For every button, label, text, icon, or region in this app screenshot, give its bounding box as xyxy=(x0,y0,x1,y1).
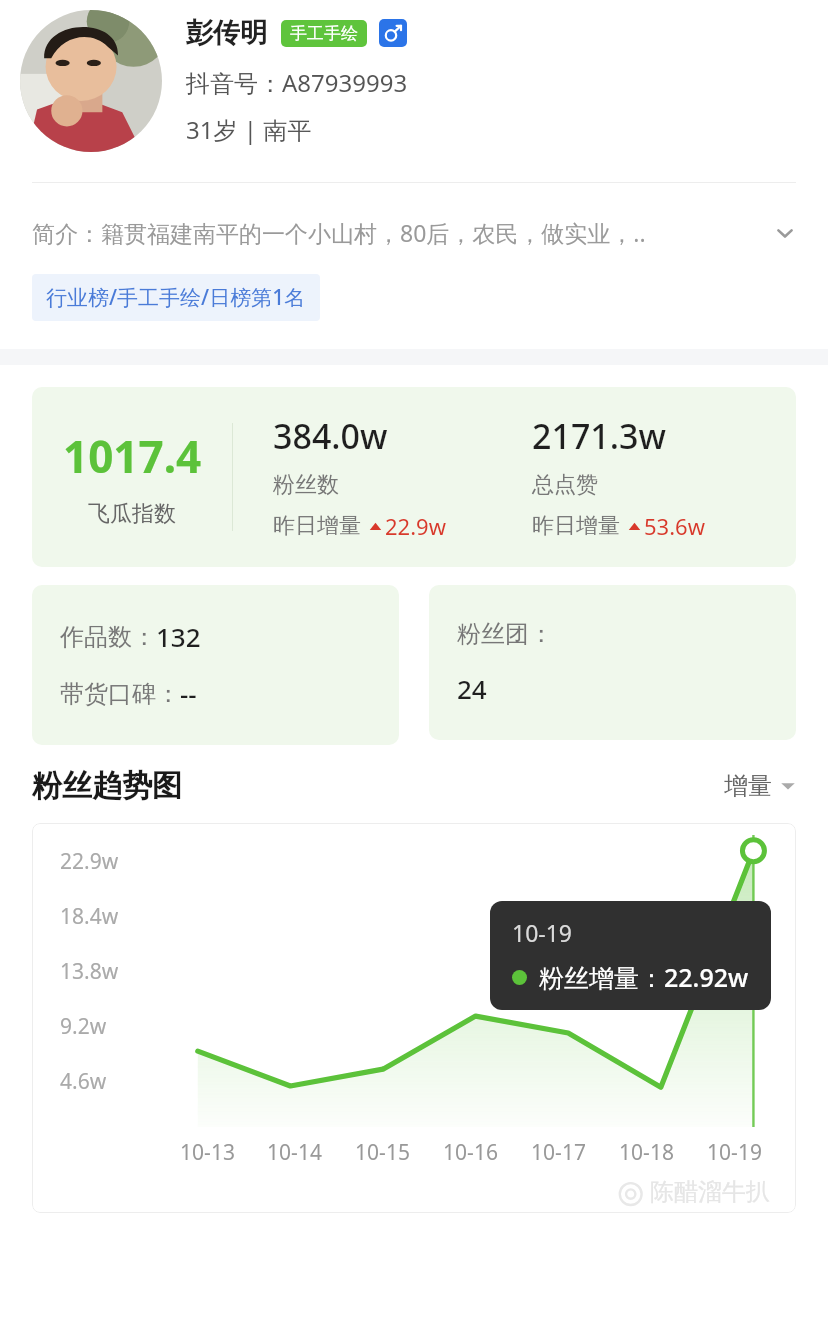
staticText: 9.2w xyxy=(60,1012,107,1041)
staticText: 10-16 xyxy=(443,1138,498,1167)
staticText: 粉丝增量：22.92w xyxy=(539,960,749,994)
staticText: 抖音号：A87939993 xyxy=(186,66,408,99)
staticText: 4.6w xyxy=(60,1067,107,1096)
staticText: 行业榜/手工手绘/日榜第1名 xyxy=(46,283,306,312)
button[interactable]: 增量 xyxy=(724,771,796,801)
button[interactable]: 1017.4 xyxy=(32,387,796,567)
staticText: 22.9w xyxy=(60,847,119,876)
staticText: -- xyxy=(180,676,197,711)
staticText: 粉丝趋势图 xyxy=(32,767,182,805)
button[interactable]: 粉丝团： xyxy=(429,585,796,740)
staticText: 总点赞 xyxy=(532,471,598,499)
staticText: 陈醋溜牛扒 xyxy=(650,1177,770,1207)
staticText: 增量 xyxy=(724,771,772,801)
staticText: 24 xyxy=(457,671,487,706)
button[interactable]: 行业榜/手工手绘/日榜第1名 xyxy=(32,274,320,321)
staticText: 13.8w xyxy=(60,957,119,986)
staticText: 10-14 xyxy=(267,1138,322,1167)
staticText: 384.0w xyxy=(273,413,388,459)
staticText: 10-15 xyxy=(355,1138,410,1167)
staticText: 作品数： xyxy=(60,622,156,652)
button[interactable]: Male xyxy=(379,19,407,47)
staticText: 132 xyxy=(156,619,201,654)
button[interactable]: 简介：籍贯福建南平的一个小山村，80后，农民，做实业，.. xyxy=(32,217,796,248)
button[interactable]: 22.9w xyxy=(32,823,796,1213)
staticText: 1017.4 xyxy=(63,426,202,486)
staticText: 2171.3w xyxy=(532,413,666,459)
staticText: 昨日增量 xyxy=(273,512,361,540)
other: Change metric xyxy=(780,778,796,794)
staticText: 粉丝数 xyxy=(273,471,339,499)
staticText: 53.6w xyxy=(644,511,705,541)
staticText: 简介：籍贯福建南平的一个小山村，80后，农民，做实业，.. xyxy=(32,217,764,248)
button[interactable]: 手工手绘 xyxy=(281,20,367,47)
staticText: 10-19 xyxy=(707,1138,762,1167)
other: Expand bio xyxy=(774,222,796,244)
button[interactable]: Profile avatar xyxy=(20,10,162,152)
staticText: 10-17 xyxy=(531,1138,586,1167)
staticText: 18.4w xyxy=(60,902,119,931)
staticText: 飞瓜指数 xyxy=(88,500,176,528)
staticText: 手工手绘 xyxy=(290,23,358,44)
staticText: 31岁 | 南平 xyxy=(186,113,312,146)
staticText: 带货口碑： xyxy=(60,679,180,709)
button[interactable]: 作品数： xyxy=(32,585,399,745)
staticText: 彭传明 xyxy=(186,16,267,50)
staticText: 10-13 xyxy=(180,1138,235,1167)
staticText: 10-19 xyxy=(512,917,573,948)
staticText: 10-18 xyxy=(619,1138,674,1167)
staticText: 粉丝团： xyxy=(457,619,553,649)
staticText: 昨日增量 xyxy=(532,512,620,540)
staticText: 22.9w xyxy=(385,511,446,541)
